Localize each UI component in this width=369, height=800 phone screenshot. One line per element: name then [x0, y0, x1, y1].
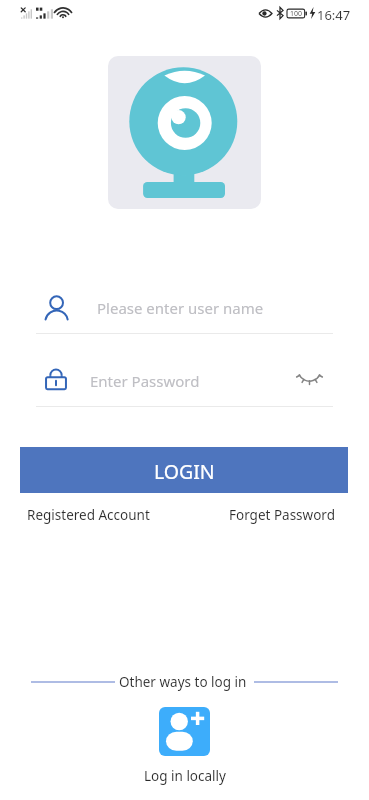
staticText: Enter Password: [90, 371, 200, 391]
staticText: Forget Password: [229, 506, 335, 524]
staticText: Other ways to log in: [119, 673, 247, 691]
staticText: LOGIN: [154, 458, 215, 485]
button[interactable]: LOGIN: [20, 447, 348, 493]
button[interactable]: Show password: [293, 360, 325, 390]
button[interactable]: Enter Password: [36, 363, 333, 406]
button[interactable]: Please enter user name: [36, 290, 333, 333]
staticText: Log in locally: [144, 767, 226, 785]
button[interactable]: Registered Account: [27, 503, 150, 527]
staticText: Registered Account: [27, 506, 150, 524]
button[interactable]: Log in locally: [159, 707, 210, 756]
staticText: 16:47: [317, 6, 351, 24]
staticText: 100: [290, 9, 303, 19]
button[interactable]: Forget Password: [229, 503, 335, 527]
staticText: Please enter user name: [97, 298, 264, 318]
